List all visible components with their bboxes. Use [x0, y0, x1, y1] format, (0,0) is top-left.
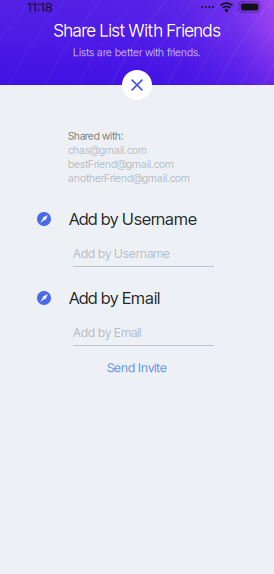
staticText: Add by Email: [73, 325, 141, 340]
staticText: Add by Email: [69, 288, 160, 308]
staticText: Send Invite: [107, 360, 167, 375]
staticText: Share List With Friends: [53, 20, 220, 41]
staticText: Add by Username: [69, 209, 197, 229]
staticText: 11:18: [27, 0, 53, 15]
staticText: Shared with:: [68, 130, 123, 142]
staticText: bestFriend@gmail.com: [68, 157, 174, 170]
staticText: Lists are better with friends.: [73, 46, 201, 59]
staticText: Add by Username: [73, 246, 170, 261]
staticText: anotherFriend@gmail.com: [68, 171, 190, 184]
button[interactable]: Send Invite: [0, 360, 274, 375]
staticText: chas@gmail.com: [68, 143, 147, 156]
button[interactable]: Close: [122, 70, 152, 100]
